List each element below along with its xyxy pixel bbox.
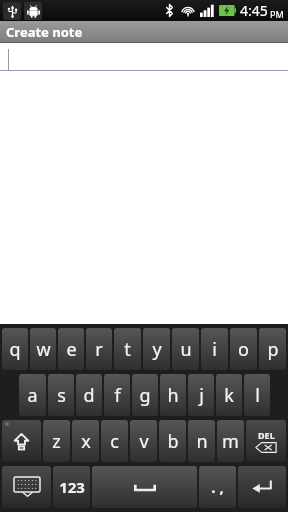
button[interactable]: b xyxy=(159,420,186,462)
staticText: q xyxy=(9,337,21,362)
staticText: i xyxy=(212,337,217,362)
staticText: t xyxy=(124,337,131,362)
button[interactable]: x xyxy=(72,420,99,462)
staticText: DEL xyxy=(258,429,275,441)
button[interactable]: r xyxy=(86,328,112,370)
staticText: x xyxy=(81,429,91,454)
button[interactable]: a xyxy=(19,374,46,416)
button[interactable]: c xyxy=(101,420,128,462)
staticText: s xyxy=(57,383,66,408)
staticText: k xyxy=(224,383,234,408)
button[interactable]: w xyxy=(30,328,56,370)
button[interactable]: u xyxy=(172,328,199,370)
button[interactable]: Space xyxy=(92,466,197,508)
button[interactable]: Shift xyxy=(2,420,41,462)
staticText: m xyxy=(222,429,239,454)
staticText: 123 xyxy=(59,477,85,497)
button[interactable]: v xyxy=(130,420,157,462)
staticText: d xyxy=(83,383,95,408)
button[interactable]: h xyxy=(160,374,186,416)
staticText: f xyxy=(114,383,121,408)
button[interactable]: g xyxy=(132,374,158,416)
button[interactable]: e xyxy=(58,328,84,370)
button[interactable]: i xyxy=(201,328,228,370)
staticText: w xyxy=(36,337,51,362)
staticText: 4:45 xyxy=(240,1,268,20)
button[interactable]: s xyxy=(48,374,74,416)
button[interactable]: j xyxy=(188,374,214,416)
button[interactable]: d xyxy=(76,374,102,416)
staticText: b xyxy=(167,429,179,454)
button[interactable]: q xyxy=(2,328,28,370)
button[interactable]: Delete xyxy=(246,420,286,462)
button[interactable]: t xyxy=(114,328,141,370)
button[interactable]: f xyxy=(104,374,130,416)
button[interactable]: z xyxy=(43,420,70,462)
button[interactable]: y xyxy=(143,328,170,370)
staticText: u xyxy=(180,337,192,362)
button[interactable]: o xyxy=(230,328,257,370)
staticText: n xyxy=(196,429,208,454)
staticText: c xyxy=(110,429,119,454)
staticText: g xyxy=(139,383,151,408)
button[interactable]: m xyxy=(217,420,244,462)
staticText: y xyxy=(152,337,162,362)
staticText: h xyxy=(167,383,179,408)
staticText: PM xyxy=(270,8,284,20)
staticText: . , xyxy=(211,477,224,497)
button[interactable]: p xyxy=(259,328,286,370)
button[interactable]: Hide keyboard xyxy=(2,466,51,508)
button[interactable]: n xyxy=(188,420,215,462)
staticText: Create note xyxy=(6,23,83,41)
button[interactable]: Create note xyxy=(0,21,288,42)
button[interactable]: . , xyxy=(199,466,236,508)
staticText: e xyxy=(66,337,77,362)
button[interactable] xyxy=(0,43,288,324)
staticText: r xyxy=(95,337,103,362)
staticText: a xyxy=(27,383,38,408)
staticText: p xyxy=(267,337,279,362)
button[interactable]: k xyxy=(216,374,242,416)
staticText: o xyxy=(238,337,249,362)
button[interactable]: 123 xyxy=(53,466,90,508)
staticText: z xyxy=(52,429,61,454)
staticText: j xyxy=(199,383,204,408)
button[interactable]: l xyxy=(244,374,270,416)
button[interactable]: Enter xyxy=(238,466,286,508)
staticText: v xyxy=(139,429,149,454)
staticText: l xyxy=(255,383,260,408)
